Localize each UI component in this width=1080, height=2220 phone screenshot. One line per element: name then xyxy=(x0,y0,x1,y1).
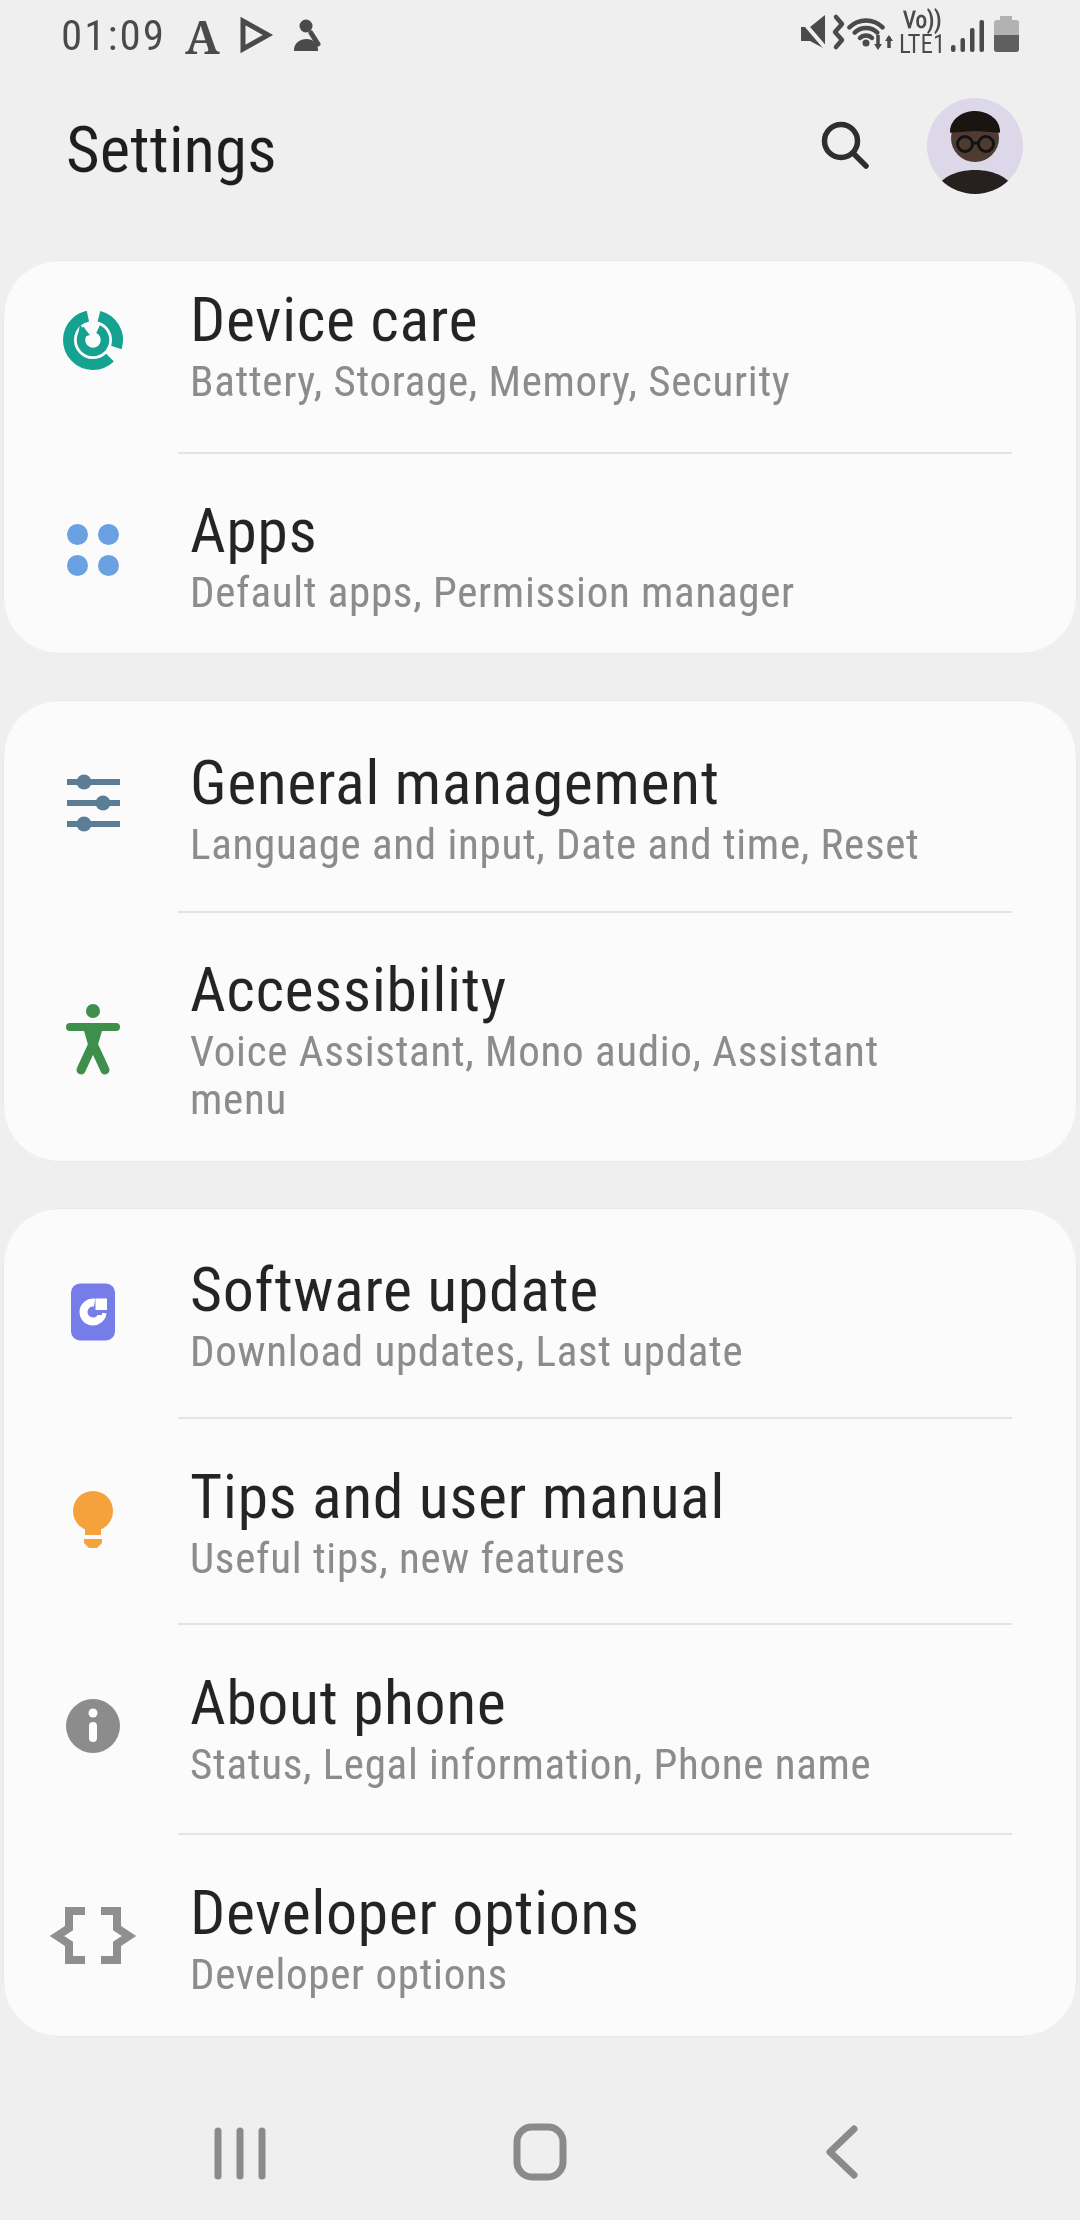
staticText: Developer options xyxy=(190,1949,508,1999)
staticText: Voice Assistant, Mono audio, Assistant m… xyxy=(190,1026,879,1124)
button[interactable] xyxy=(927,98,1023,194)
staticText: Developer options xyxy=(190,1876,640,1949)
staticText: Accessibility xyxy=(190,953,507,1026)
button[interactable]: Device care xyxy=(3,260,1077,452)
button[interactable]: Developer options xyxy=(3,1835,1077,2037)
button[interactable] xyxy=(790,2120,890,2220)
staticText: Status, Legal information, Phone name xyxy=(190,1739,872,1789)
staticText: Software update xyxy=(190,1253,599,1326)
button[interactable]: General management xyxy=(3,700,1077,911)
staticText: A xyxy=(185,5,220,68)
button[interactable]: Software update xyxy=(3,1208,1077,1417)
button[interactable]: Apps xyxy=(3,454,1077,654)
staticText: Settings xyxy=(66,112,277,188)
staticText: Useful tips, new features xyxy=(190,1533,626,1583)
staticText: About phone xyxy=(190,1666,507,1739)
staticText: Apps xyxy=(190,494,318,567)
button[interactable] xyxy=(490,2120,590,2220)
staticText: 01:09 xyxy=(61,10,166,60)
staticText: Default apps, Permission manager xyxy=(190,567,795,617)
button[interactable]: Accessibility xyxy=(3,913,1077,1162)
button[interactable]: Tips and user manual xyxy=(3,1419,1077,1623)
staticText: Device care xyxy=(190,283,478,356)
staticText: LTE1 xyxy=(899,30,946,59)
staticText: Tips and user manual xyxy=(190,1460,726,1533)
staticText: Vo)) xyxy=(903,7,942,34)
staticText: Download updates, Last update xyxy=(190,1326,744,1376)
button[interactable] xyxy=(795,95,891,191)
button[interactable] xyxy=(190,2120,290,2220)
staticText: General management xyxy=(190,746,720,819)
staticText: Battery, Storage, Memory, Security xyxy=(190,356,791,406)
button[interactable]: About phone xyxy=(3,1625,1077,1833)
staticText: Language and input, Date and time, Reset xyxy=(190,819,920,869)
